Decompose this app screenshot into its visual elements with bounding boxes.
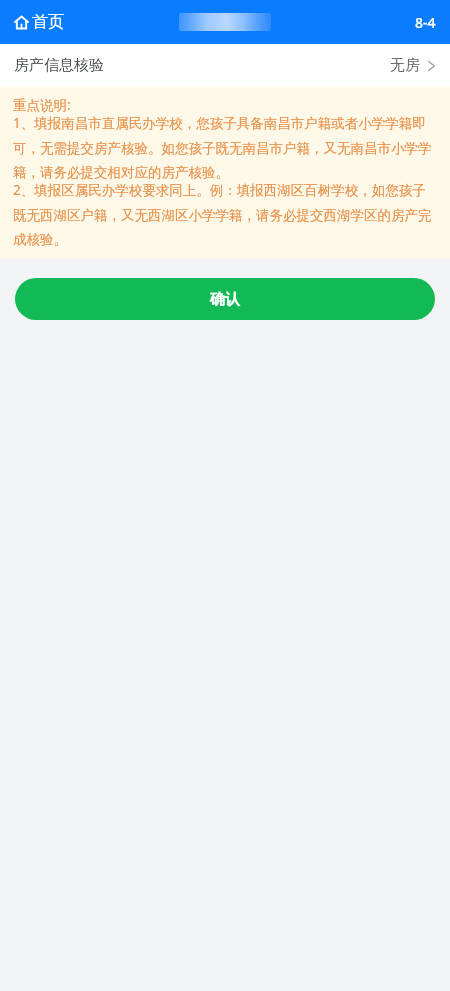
staticText: 8-4: [415, 13, 436, 32]
staticText: 1、填报南昌市直属民办学校，您孩子具备南昌市户籍或者小学学籍即可，无需提交房产核…: [13, 114, 437, 181]
other: Home: [14, 15, 29, 30]
staticText: 确认: [210, 290, 240, 309]
staticText: 重点说明:: [13, 96, 71, 114]
button[interactable]: 房产信息核验: [0, 44, 450, 87]
button[interactable]: 确认: [15, 278, 435, 320]
staticText: 首页: [32, 12, 64, 32]
button[interactable]: Home: [10, 8, 68, 36]
staticText: 房产信息核验: [14, 56, 104, 75]
staticText: 无房: [390, 56, 420, 75]
staticText: 2、填报区属民办学校要求同上。例：填报西湖区百树学校，如您孩子既无西湖区户籍，又…: [13, 181, 437, 248]
